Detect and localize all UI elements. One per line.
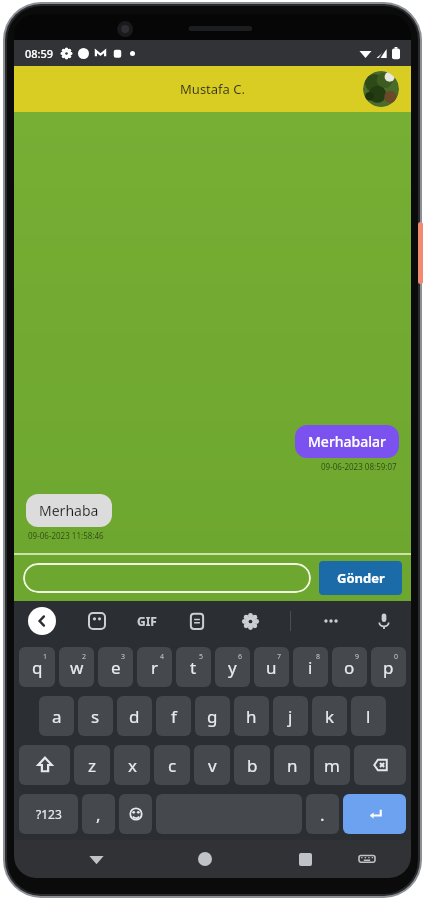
staticText: 1 — [43, 652, 48, 662]
staticText: Merhaba — [39, 501, 99, 520]
button[interactable]: c — [154, 745, 190, 785]
button[interactable]: g — [195, 696, 230, 736]
staticText: 7 — [277, 652, 282, 662]
button[interactable]: u — [254, 647, 289, 687]
button[interactable]: Shift — [19, 745, 70, 785]
staticText: . — [320, 803, 325, 826]
button[interactable]: a — [39, 696, 74, 736]
staticText: t — [190, 656, 197, 679]
button[interactable]: q — [19, 647, 55, 687]
button[interactable]: Switch keyboard — [352, 844, 382, 874]
button[interactable]: e — [98, 647, 133, 687]
button[interactable]: Back — [28, 607, 56, 635]
button[interactable]: Clipboard — [184, 608, 210, 634]
button[interactable]: w — [59, 647, 94, 687]
button[interactable]: m — [314, 745, 350, 785]
staticText: e — [111, 656, 121, 679]
button[interactable]: Backspace — [354, 745, 406, 785]
staticText: , — [96, 803, 101, 826]
staticText: z — [88, 754, 96, 777]
staticText: i — [308, 656, 313, 679]
button[interactable]: x — [114, 745, 150, 785]
staticText: h — [246, 705, 257, 728]
staticText: ?123 — [36, 806, 62, 822]
staticText: 4 — [160, 652, 165, 662]
button[interactable]: . — [306, 794, 339, 834]
staticText: GIF — [137, 613, 157, 629]
staticText: 2 — [82, 652, 87, 662]
staticText: b — [247, 754, 258, 777]
staticText: Merhabalar — [308, 432, 386, 451]
staticText: 6 — [238, 652, 243, 662]
staticText: 5 — [199, 652, 204, 662]
button[interactable]: l — [351, 696, 386, 736]
button[interactable]: d — [117, 696, 152, 736]
button[interactable]: Stickers — [84, 608, 110, 634]
button[interactable]: Emoji — [119, 794, 152, 834]
staticText: 09-06-2023 11:58:46 — [28, 530, 104, 541]
button[interactable]: y — [215, 647, 250, 687]
button[interactable]: n — [274, 745, 310, 785]
staticText: Gönder — [337, 569, 385, 587]
staticText: k — [325, 705, 335, 728]
staticText: j — [288, 705, 293, 728]
staticText: 08:59 — [25, 46, 54, 61]
staticText: l — [366, 705, 371, 728]
button[interactable]: z — [74, 745, 110, 785]
button[interactable]: Merhabalar — [295, 425, 399, 458]
staticText: x — [128, 754, 137, 777]
button[interactable]: Voice input — [371, 608, 397, 634]
staticText: g — [207, 705, 218, 728]
button[interactable]: i — [293, 647, 328, 687]
button[interactable]: k — [312, 696, 347, 736]
staticText: m — [324, 754, 340, 777]
staticText: Mustafa C. — [180, 80, 245, 98]
staticText: s — [91, 705, 100, 728]
staticText: y — [228, 656, 237, 679]
button[interactable]: Merhaba — [26, 494, 112, 527]
button[interactable]: Profile photo — [363, 71, 399, 107]
button[interactable]: Settings — [237, 608, 263, 634]
staticText: 0 — [394, 652, 399, 662]
button[interactable]: v — [194, 745, 230, 785]
staticText: v — [208, 754, 217, 777]
staticText: w — [70, 656, 84, 679]
button[interactable]: h — [234, 696, 269, 736]
button[interactable]: r — [137, 647, 172, 687]
button[interactable]: f — [156, 696, 191, 736]
button[interactable]: p — [371, 647, 406, 687]
button[interactable]: Gönder — [319, 561, 402, 595]
button[interactable]: More options — [318, 608, 344, 634]
button[interactable]: b — [234, 745, 270, 785]
button[interactable]: o — [332, 647, 367, 687]
button[interactable]: Enter — [343, 794, 406, 834]
button[interactable]: t — [176, 647, 211, 687]
staticText: 3 — [121, 652, 126, 662]
button[interactable]: GIF — [137, 613, 157, 629]
staticText: 09-06-2023 08:59:07 — [321, 461, 397, 472]
button[interactable]: j — [273, 696, 308, 736]
staticText: r — [151, 656, 159, 679]
button[interactable]: s — [78, 696, 113, 736]
button[interactable]: ?123 — [19, 794, 78, 834]
staticText: f — [171, 705, 177, 728]
button[interactable]: Message input — [23, 563, 311, 593]
staticText: p — [383, 656, 394, 679]
staticText: q — [32, 656, 43, 679]
button[interactable]: Home — [190, 844, 220, 874]
staticText: u — [266, 656, 277, 679]
staticText: a — [52, 705, 62, 728]
staticText: 8 — [316, 652, 321, 662]
staticText: 9 — [355, 652, 360, 662]
staticText: c — [168, 754, 177, 777]
button[interactable]: Recent apps — [290, 844, 320, 874]
staticText: n — [287, 754, 298, 777]
button[interactable]: , — [82, 794, 115, 834]
staticText: o — [344, 656, 355, 679]
staticText: d — [129, 705, 140, 728]
button[interactable]: Hide keyboard — [81, 844, 111, 874]
